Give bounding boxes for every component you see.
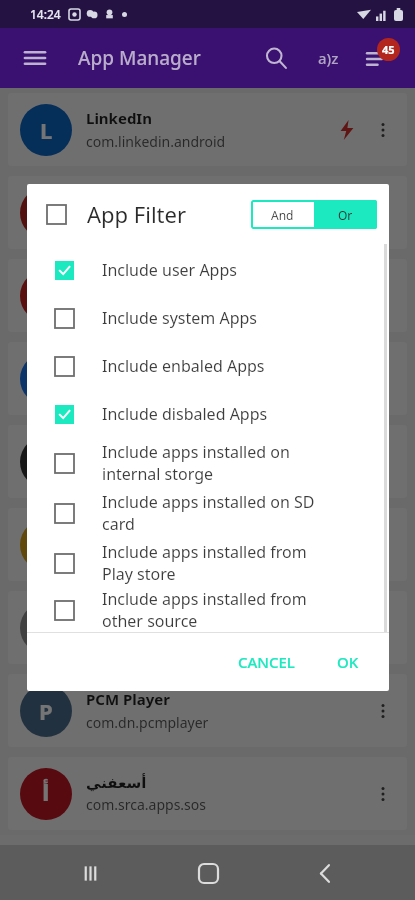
- staticText: أسعفني: [86, 774, 147, 791]
- staticText: Include user Apps: [102, 259, 237, 281]
- staticText: other source: [102, 610, 198, 632]
- button[interactable]: More options: [371, 616, 395, 640]
- staticText: LinkedIn: [86, 108, 152, 128]
- button[interactable]: Include apps installed on SD: [27, 488, 389, 538]
- staticText: Include enbaled Apps: [102, 355, 265, 377]
- staticText: com.linkedin.android: [86, 132, 226, 151]
- staticText: com.facebook.orca: [86, 215, 211, 234]
- button[interactable]: More options: [371, 699, 395, 723]
- staticText: M: [36, 281, 57, 311]
- staticText: com.sec.files: [86, 630, 170, 649]
- staticText: internal storge: [102, 463, 214, 485]
- button[interactable]: M: [8, 176, 407, 249]
- staticText: Include apps installed from: [102, 541, 307, 563]
- staticText: App Filter: [87, 199, 187, 229]
- button[interactable]: أ: [8, 757, 407, 830]
- button[interactable]: OK: [325, 644, 371, 680]
- staticText: CANCEL: [238, 652, 295, 672]
- staticText: com.sec.notes: [86, 464, 180, 483]
- staticText: Include disbaled Apps: [102, 403, 268, 425]
- button[interactable]: Include apps installed from: [27, 538, 389, 588]
- staticText: Play store: [102, 563, 176, 585]
- button[interactable]: M: [8, 259, 407, 332]
- staticText: Or: [338, 207, 353, 223]
- button[interactable]: Include system Apps: [27, 294, 389, 342]
- button[interactable]: Select all: [47, 197, 81, 231]
- staticText: L: [40, 115, 53, 145]
- button[interactable]: And: [251, 200, 314, 229]
- button[interactable]: Include enbaled Apps: [27, 342, 389, 390]
- button[interactable]: Or: [314, 200, 377, 229]
- button[interactable]: L: [8, 93, 407, 166]
- staticText: M: [36, 530, 57, 560]
- button[interactable]: Include user Apps: [27, 246, 389, 294]
- staticText: 14:24: [30, 6, 61, 22]
- button[interactable]: Search: [255, 37, 297, 79]
- staticText: OK: [337, 652, 359, 672]
- staticText: F: [40, 613, 53, 643]
- button[interactable]: CANCEL: [226, 644, 307, 680]
- staticText: Files: [86, 606, 120, 626]
- staticText: Include apps installed on SD: [102, 491, 315, 513]
- button[interactable]: More options: [371, 533, 395, 557]
- button[interactable]: Back: [298, 846, 352, 900]
- staticText: M: [36, 198, 57, 228]
- staticText: Include apps installed from: [102, 588, 307, 610]
- staticText: card: [102, 513, 135, 535]
- button[interactable]: More options: [371, 782, 395, 806]
- button[interactable]: Recents: [63, 846, 117, 900]
- staticText: Notes: [86, 440, 131, 460]
- staticText: And: [271, 207, 294, 223]
- staticText: D: [38, 364, 55, 394]
- staticText: Memo: [86, 523, 134, 543]
- staticText: أ: [42, 781, 50, 807]
- button[interactable]: Sort: [307, 37, 349, 79]
- staticText: App Manager: [78, 45, 201, 71]
- button[interactable]: D: [8, 342, 407, 415]
- button[interactable]: Menu: [14, 37, 56, 79]
- button[interactable]: Include disbaled Apps: [27, 390, 389, 438]
- staticText: com.google.maps: [86, 298, 204, 317]
- staticText: Include apps installed on: [102, 441, 290, 463]
- staticText: Maps: [86, 274, 127, 294]
- button[interactable]: More options: [371, 367, 395, 391]
- button[interactable]: Home: [181, 846, 235, 900]
- button[interactable]: More options: [371, 284, 395, 308]
- button[interactable]: More options: [371, 118, 395, 142]
- button[interactable]: Include apps installed on: [27, 438, 389, 488]
- staticText: Drive: [86, 357, 126, 377]
- button[interactable]: N: [8, 425, 407, 498]
- staticText: a)z: [318, 48, 339, 68]
- button[interactable]: F: [8, 591, 407, 664]
- button[interactable]: M: [8, 508, 407, 581]
- button[interactable]: P: [8, 674, 407, 747]
- staticText: P: [39, 696, 53, 726]
- button[interactable]: More options: [371, 201, 395, 225]
- staticText: com.srca.apps.sos: [86, 795, 206, 814]
- button[interactable]: Include apps installed from: [27, 588, 389, 632]
- staticText: com.dn.pcmplayer: [86, 713, 209, 732]
- staticText: Include system Apps: [102, 307, 258, 329]
- staticText: Messenger: [86, 191, 169, 211]
- button[interactable]: Filter: [357, 36, 401, 80]
- staticText: 45: [382, 42, 395, 57]
- staticText: N: [37, 447, 55, 477]
- staticText: com.sec.memo: [86, 547, 186, 566]
- staticText: PCM Player: [86, 689, 170, 709]
- button[interactable]: More options: [371, 450, 395, 474]
